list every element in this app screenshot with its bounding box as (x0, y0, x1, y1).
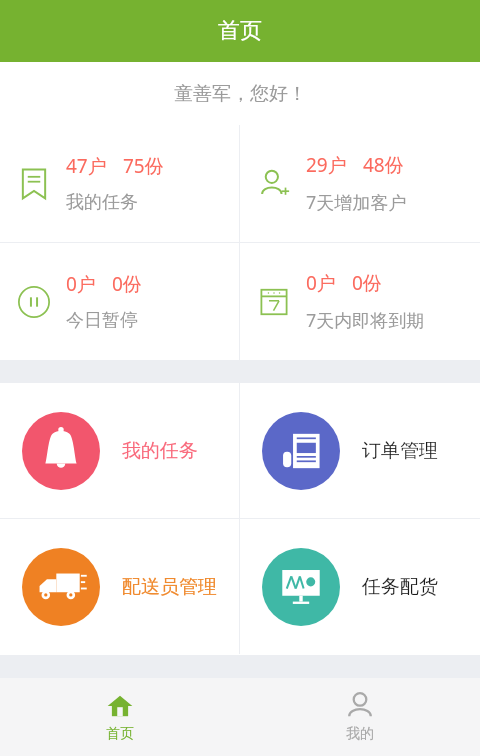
button[interactable]: 我的任务 (0, 383, 239, 518)
staticText: 0户 (306, 270, 336, 296)
staticText: 我的任务 (66, 191, 138, 214)
staticText: 我的任务 (122, 439, 198, 463)
staticText: 0份 (112, 271, 142, 297)
staticText: 订单管理 (362, 439, 438, 463)
staticText: 首页 (218, 17, 262, 45)
staticText: 任务配货 (362, 575, 438, 599)
button[interactable]: 任务配货 (240, 519, 480, 654)
button[interactable]: 订单管理 (240, 383, 480, 518)
staticText: 47户 (66, 153, 107, 179)
staticText: 7天增加客户 (306, 190, 407, 215)
staticText: 48份 (363, 152, 404, 178)
button[interactable]: Paused today (0, 243, 239, 360)
staticText: 首页 (106, 725, 134, 743)
button[interactable]: Expiring soon (240, 243, 480, 360)
button[interactable]: 我的 (240, 678, 480, 756)
button[interactable]: 首页 (0, 678, 240, 756)
staticText: 0户 (66, 271, 96, 297)
staticText: 童善军，您好！ (174, 82, 307, 106)
staticText: 75份 (123, 153, 164, 179)
staticText: 配送员管理 (122, 575, 217, 599)
staticText: 7天内即将到期 (306, 308, 425, 333)
staticText: 我的 (346, 725, 374, 743)
button[interactable]: 配送员管理 (0, 519, 239, 654)
staticText: 29户 (306, 152, 347, 178)
staticText: 0份 (352, 270, 382, 296)
button[interactable]: My tasks (0, 125, 239, 242)
button[interactable]: New customers (240, 125, 480, 242)
staticText: 今日暂停 (66, 309, 138, 332)
